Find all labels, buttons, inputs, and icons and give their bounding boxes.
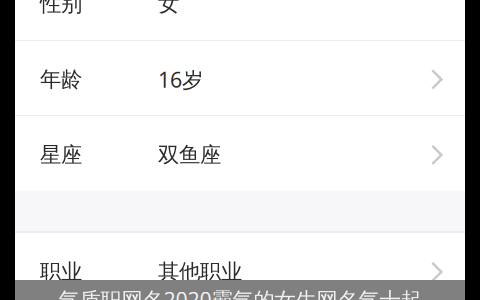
button[interactable]: 星座	[15, 116, 465, 191]
staticText: 星座	[40, 142, 82, 168]
button[interactable]: 性别	[15, 0, 465, 40]
staticText: 16岁	[158, 65, 203, 94]
staticText: 双鱼座	[158, 142, 221, 168]
staticText: 其他职业	[158, 259, 242, 285]
staticText: 女	[158, 0, 179, 17]
staticText: 年龄	[40, 66, 82, 93]
staticText: 气质职网名2020霸气的女生网名气十起	[58, 285, 421, 300]
button[interactable]: 职业	[15, 233, 465, 300]
staticText: 职业	[40, 259, 82, 285]
button[interactable]: 年龄	[15, 41, 465, 115]
staticText: 性别	[40, 0, 82, 17]
